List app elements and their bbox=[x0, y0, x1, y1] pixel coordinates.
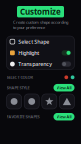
staticText: SHAPE STYLE bbox=[6, 85, 29, 90]
staticText: View All bbox=[56, 85, 71, 90]
staticText: Select Shape bbox=[18, 38, 49, 45]
staticText: FAVORITE SHAPES bbox=[6, 114, 39, 119]
button[interactable]: Transparency bbox=[6, 58, 74, 70]
button[interactable]: View All bbox=[53, 84, 74, 91]
button[interactable]: Highlight bbox=[6, 47, 74, 58]
staticText: Transparency bbox=[18, 60, 52, 68]
staticText: SELECT COLOR bbox=[6, 75, 33, 80]
button[interactable]: Shape option bbox=[59, 94, 74, 109]
staticText: Highlight bbox=[18, 49, 39, 56]
staticText: Customize bbox=[20, 6, 61, 17]
staticText: View All bbox=[56, 114, 71, 119]
button[interactable]: View All bbox=[53, 113, 74, 120]
button[interactable]: Shape option bbox=[42, 94, 57, 109]
button[interactable]: Shape option bbox=[24, 94, 39, 109]
button[interactable]: Shape option bbox=[7, 94, 22, 109]
button[interactable]: Select Shape bbox=[6, 36, 74, 47]
staticText: Create custom shape according to your pr… bbox=[13, 19, 68, 30]
